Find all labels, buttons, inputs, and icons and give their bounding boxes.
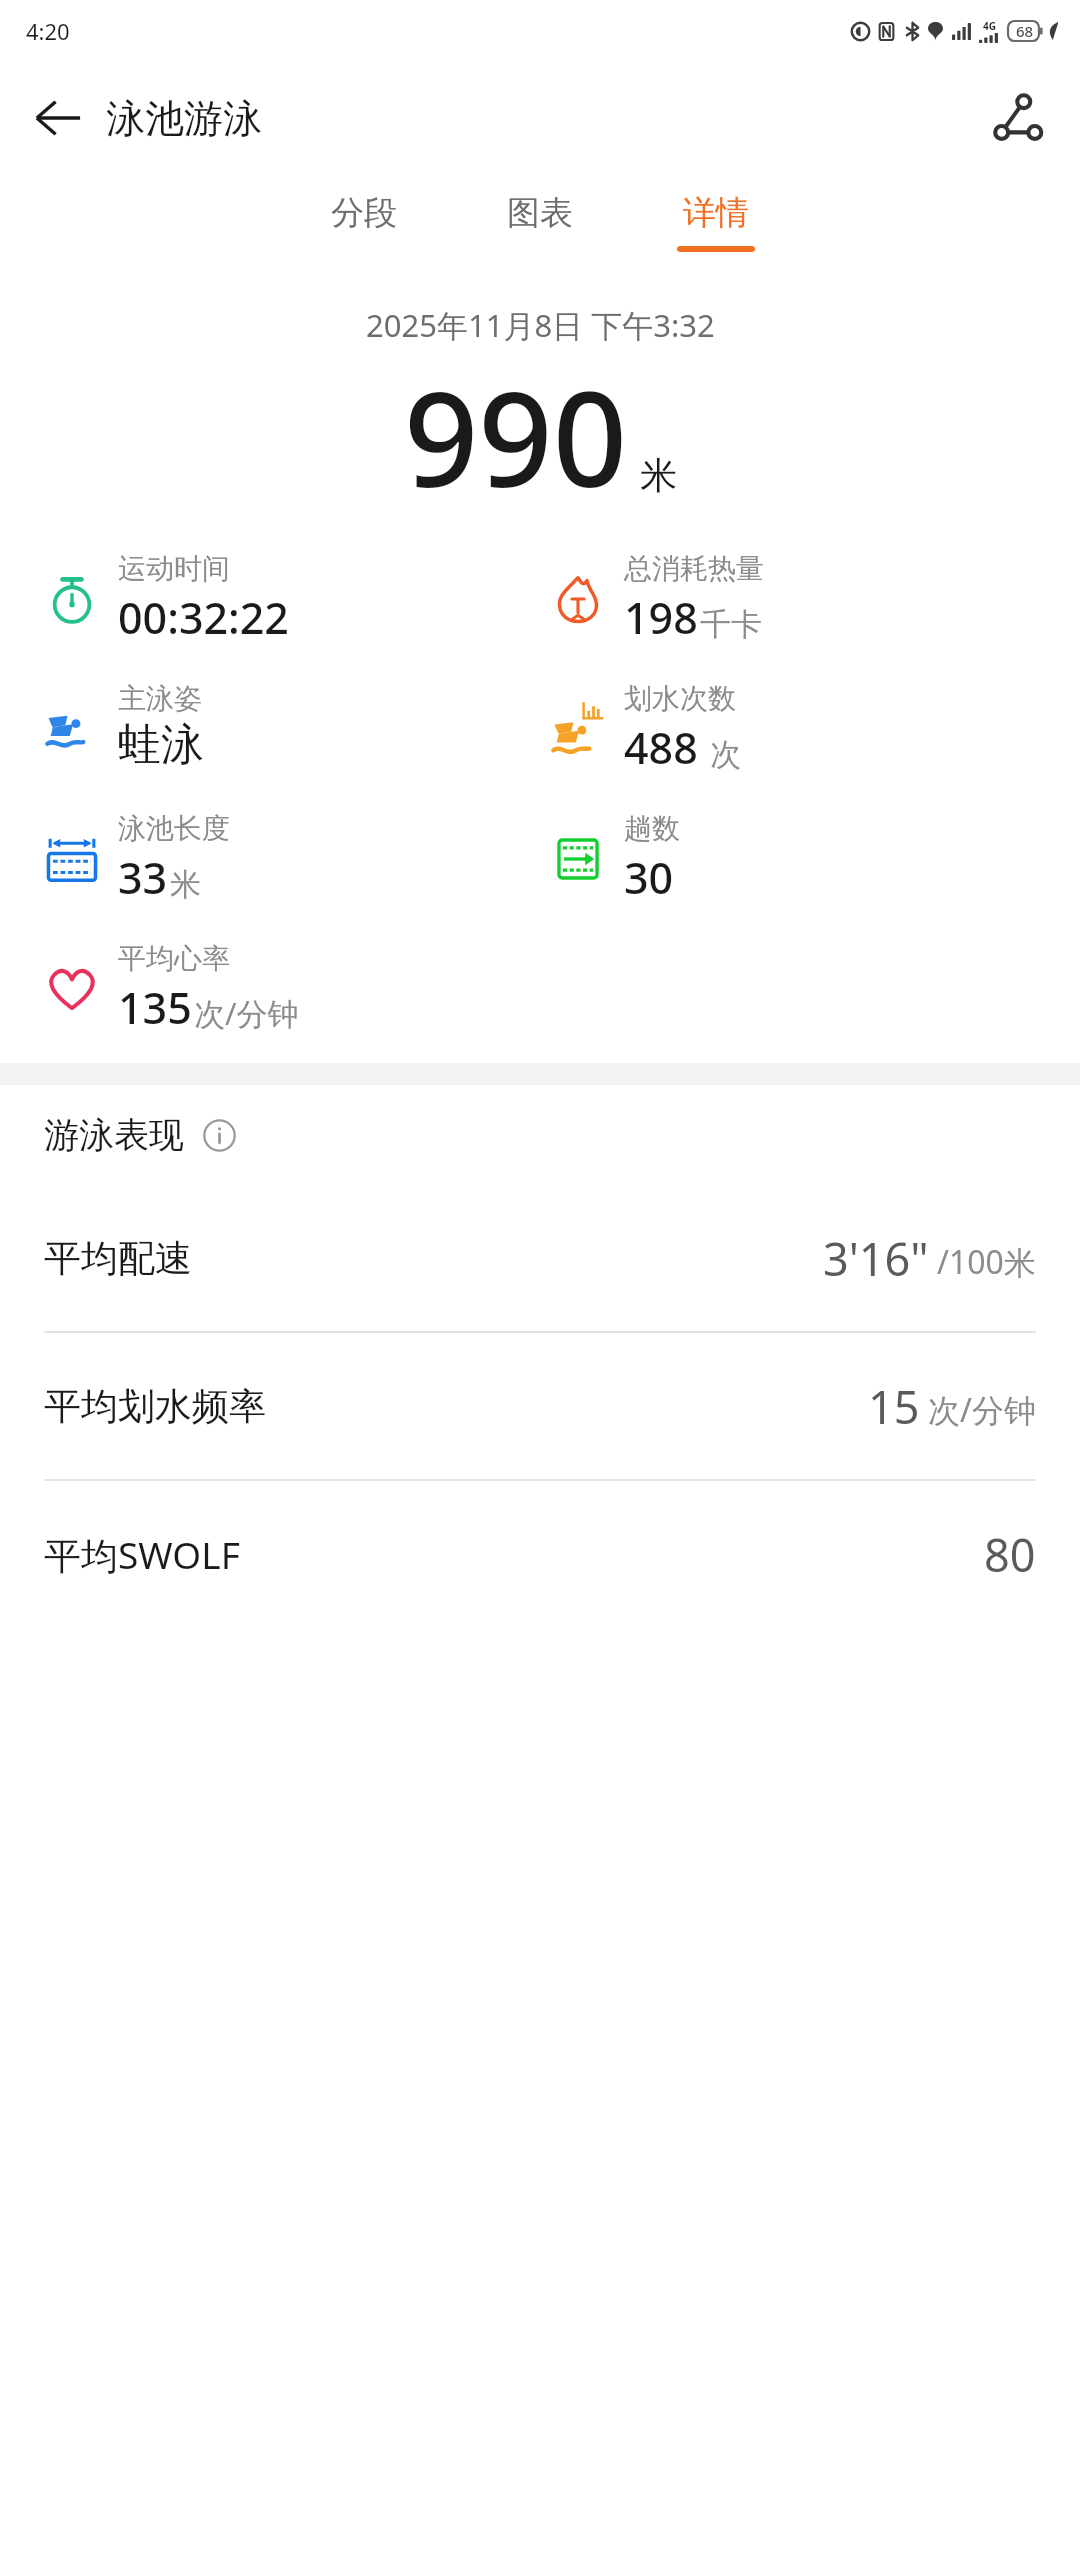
- button[interactable]: 详情: [650, 174, 782, 278]
- button[interactable]: 图表: [474, 174, 606, 278]
- staticText: 趟数: [624, 811, 680, 846]
- staticText: 990: [404, 348, 628, 525]
- button[interactable]: 总消耗热量: [550, 551, 764, 647]
- button[interactable]: 泳池长度: [44, 811, 230, 907]
- staticText: 米: [170, 865, 201, 904]
- button[interactable]: 划水次数: [550, 681, 741, 777]
- staticText: 千卡: [700, 605, 762, 644]
- staticText: /100米: [937, 1240, 1036, 1284]
- staticText: 详情: [683, 192, 749, 234]
- button[interactable]: 说明: [196, 1112, 242, 1158]
- button[interactable]: 平均配速: [0, 1185, 1080, 1331]
- staticText: 4G: [983, 19, 996, 33]
- button[interactable]: 分享: [978, 78, 1058, 158]
- staticText: 平均心率: [118, 941, 230, 976]
- staticText: 次/分钟: [928, 1388, 1036, 1432]
- staticText: 分段: [331, 192, 397, 234]
- staticText: 68: [1016, 21, 1034, 41]
- staticText: 米: [640, 452, 677, 499]
- staticText: 平均划水频率: [44, 1383, 868, 1430]
- staticText: 游泳表现: [44, 1113, 184, 1157]
- button[interactable]: 平均SWOLF: [0, 1481, 1080, 1627]
- button[interactable]: 返回: [20, 80, 96, 156]
- staticText: 平均配速: [44, 1235, 823, 1282]
- staticText: 蛙泳: [118, 718, 204, 772]
- staticText: 488: [624, 718, 698, 777]
- staticText: 主泳姿: [118, 681, 202, 716]
- staticText: 泳池长度: [118, 811, 230, 846]
- button[interactable]: 运动时间: [44, 551, 289, 647]
- staticText: 平均SWOLF: [44, 1529, 984, 1580]
- staticText: 2025年11月8日 下午3:32: [366, 304, 715, 346]
- button[interactable]: 平均心率: [44, 941, 299, 1037]
- staticText: 3'16": [823, 1228, 929, 1289]
- staticText: 33: [118, 848, 168, 907]
- staticText: 4:20: [26, 16, 70, 46]
- staticText: 次/分钟: [194, 992, 299, 1034]
- staticText: 135: [118, 978, 192, 1037]
- staticText: 198: [624, 588, 698, 647]
- staticText: 运动时间: [118, 551, 230, 586]
- button[interactable]: 平均划水频率: [0, 1333, 1080, 1479]
- staticText: 00:32:22: [118, 588, 289, 647]
- staticText: 划水次数: [624, 681, 736, 716]
- staticText: 30: [624, 848, 674, 907]
- staticText: 15: [868, 1376, 920, 1437]
- staticText: 次: [710, 735, 741, 774]
- button[interactable]: 主泳姿: [44, 681, 204, 772]
- staticText: 图表: [507, 192, 573, 234]
- staticText: 泳池游泳: [106, 94, 262, 143]
- button[interactable]: 趟数: [550, 811, 680, 907]
- staticText: 80: [984, 1524, 1036, 1585]
- staticText: 总消耗热量: [624, 551, 764, 586]
- button[interactable]: 分段: [298, 174, 430, 278]
